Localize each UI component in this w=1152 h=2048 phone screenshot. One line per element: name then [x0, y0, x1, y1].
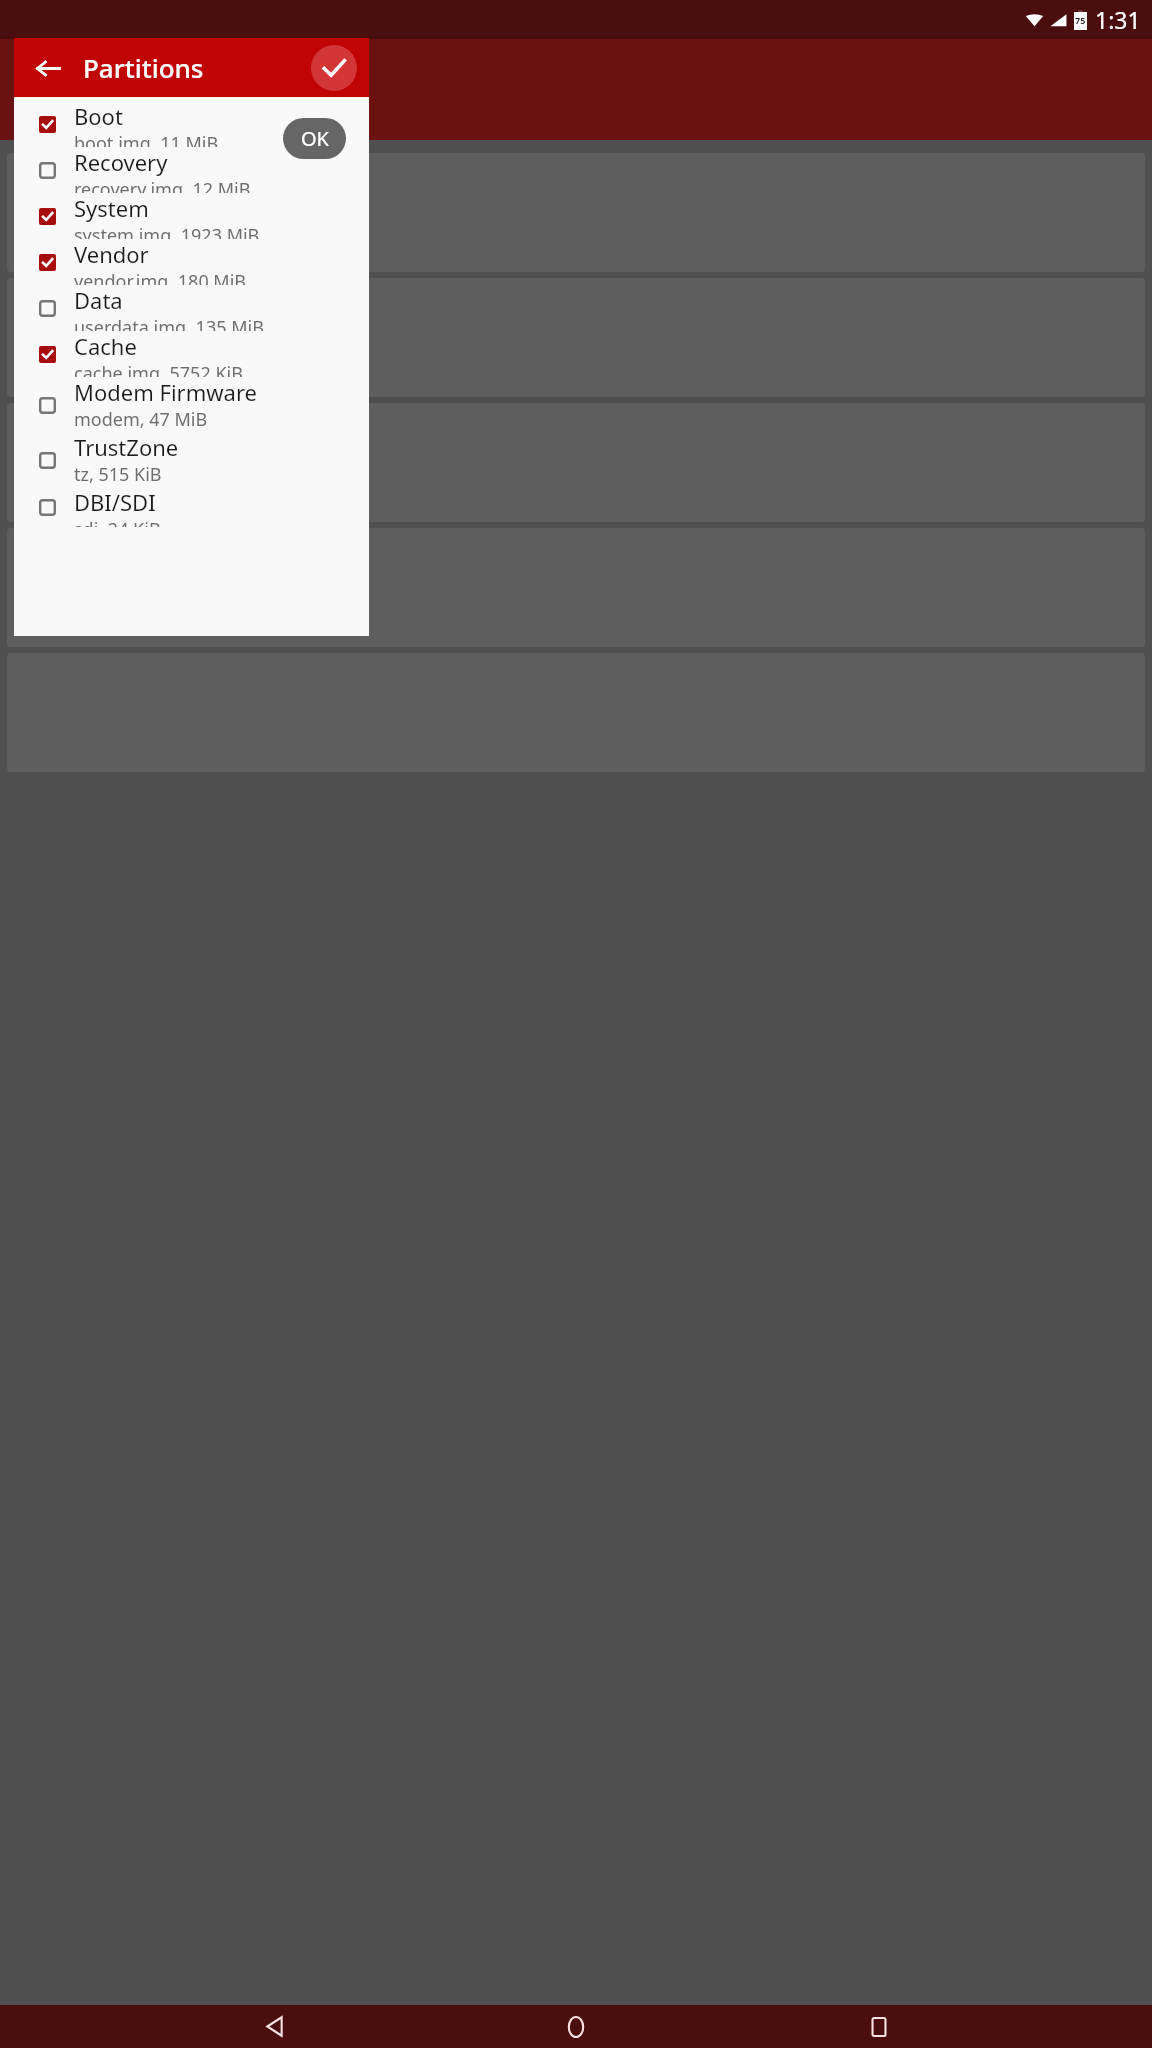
- button[interactable]: Confirm: [311, 45, 357, 91]
- button[interactable]: TrustZone: [14, 432, 369, 487]
- staticText: Vendor: [74, 239, 149, 269]
- button[interactable]: Back: [245, 2005, 303, 2048]
- staticText: recovery.img, 12 MiB: [74, 177, 251, 193]
- staticText: cache.img, 5752 KiB: [74, 361, 243, 377]
- staticText: TrustZone: [74, 432, 179, 462]
- button[interactable]: Boot: [14, 101, 369, 147]
- staticText: Recovery: [74, 147, 168, 177]
- button[interactable]: Cache: [14, 331, 369, 377]
- staticText: vendor.img, 180 MiB: [74, 269, 247, 285]
- staticText: Boot: [74, 101, 123, 131]
- button[interactable]: Vendor: [14, 239, 369, 285]
- staticText: modem, 47 MiB: [74, 407, 208, 432]
- staticText: system.img, 1923 MiB: [74, 223, 260, 239]
- staticText: userdata.img, 135 MiB: [74, 315, 264, 331]
- staticText: boot.img, 11 MiB: [74, 131, 219, 147]
- button[interactable]: Data: [14, 285, 369, 331]
- staticText: tz, 515 KiB: [74, 462, 162, 487]
- staticText: DBI/SDI: [74, 487, 156, 517]
- button[interactable]: Recents: [850, 2005, 908, 2048]
- staticText: 1:31: [1095, 4, 1141, 35]
- button[interactable]: Back: [24, 44, 72, 92]
- button[interactable]: Modem Firmware: [14, 377, 369, 432]
- staticText: Partitions: [83, 50, 204, 85]
- button[interactable]: Home: [547, 2005, 605, 2048]
- button[interactable]: OK: [283, 118, 346, 159]
- button[interactable]: System: [14, 193, 369, 239]
- staticText: System: [74, 193, 149, 223]
- staticText: Data: [74, 285, 123, 315]
- staticText: Actions: [72, 106, 159, 140]
- staticText: sdi, 24 KiB: [74, 517, 161, 527]
- staticText: 75: [1075, 14, 1086, 26]
- button[interactable]: Recovery: [14, 147, 369, 193]
- staticText: Cache: [74, 331, 137, 361]
- staticText: Modem Firmware: [74, 377, 257, 407]
- staticText: OK: [301, 125, 329, 152]
- button[interactable]: DBI/SDI: [14, 487, 369, 527]
